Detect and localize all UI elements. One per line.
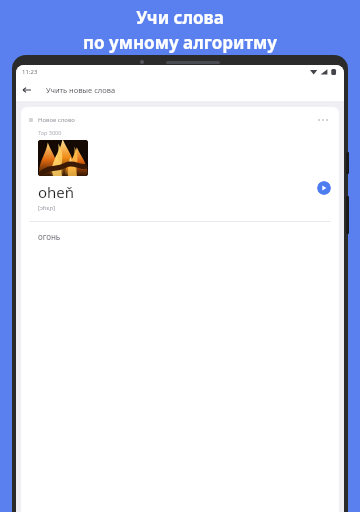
staticText: Учить новые слова xyxy=(46,85,116,95)
staticText: Top 3000 xyxy=(38,129,62,136)
staticText: огонь xyxy=(38,231,61,242)
staticText: oheň xyxy=(38,182,75,202)
button[interactable]: Back xyxy=(16,79,38,101)
button[interactable]: More options xyxy=(315,114,331,126)
staticText: Новое слово xyxy=(38,116,75,124)
staticText: Учи слова xyxy=(136,6,224,29)
staticText: [ɔɦɛɲ] xyxy=(38,204,56,212)
button[interactable]: Play pronunciation xyxy=(317,181,331,195)
staticText: 11:23 xyxy=(22,68,38,76)
staticText: по умному алгоритму xyxy=(83,31,277,54)
